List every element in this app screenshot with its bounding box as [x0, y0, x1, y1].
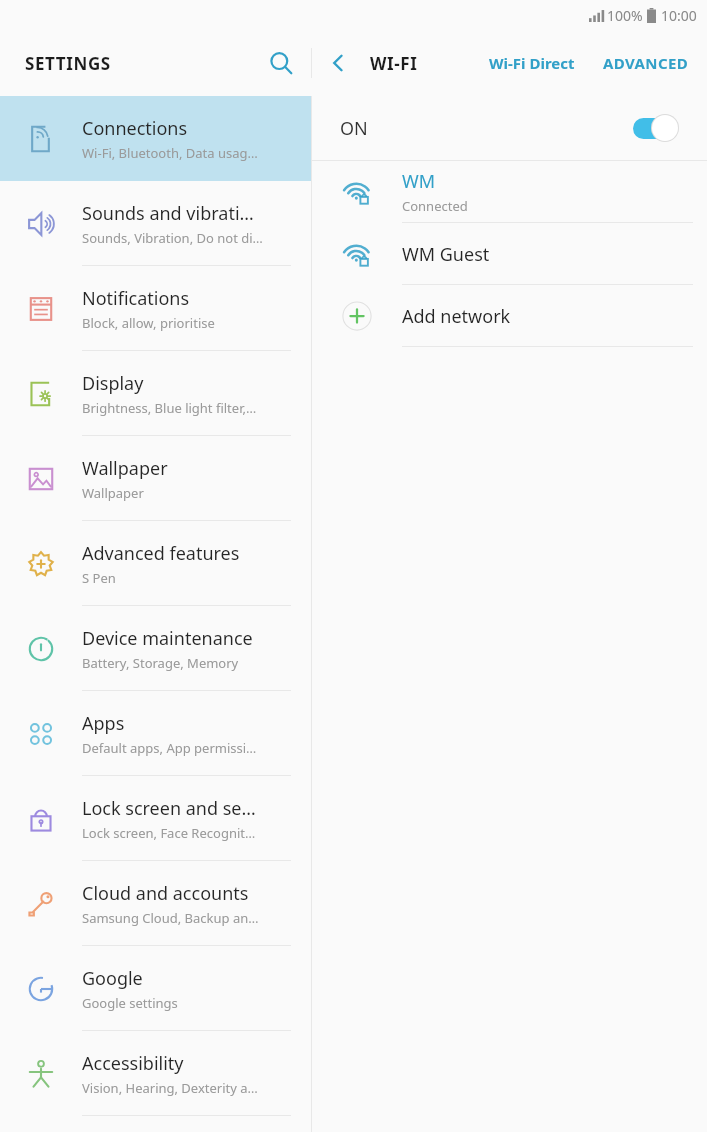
staticText: Wi-Fi, Bluetooth, Data usag… — [82, 144, 258, 162]
button[interactable]: Cloud and accounts — [0, 861, 311, 946]
staticText: Lock screen, Face Recognit… — [82, 824, 256, 842]
button[interactable]: Display — [0, 351, 311, 436]
staticText: Brightness, Blue light filter,… — [82, 399, 257, 417]
button[interactable]: Wallpaper — [0, 436, 311, 521]
staticText: Add network — [402, 304, 511, 329]
staticText: WM — [402, 169, 436, 194]
staticText: Connected — [402, 197, 468, 215]
button[interactable]: Wi-Fi Direct — [479, 41, 585, 85]
button[interactable]: Apps — [0, 691, 311, 776]
staticText: Sounds and vibrati… — [82, 201, 254, 226]
staticText: Google settings — [82, 994, 178, 1012]
staticText: Battery, Storage, Memory — [82, 654, 239, 672]
staticText: Wallpaper — [82, 456, 168, 481]
staticText: Block, allow, prioritise — [82, 314, 215, 332]
staticText: S Pen — [82, 569, 116, 587]
staticText: Wallpaper — [82, 484, 144, 502]
staticText: ON — [340, 116, 368, 141]
button[interactable]: Add network — [312, 285, 707, 347]
button[interactable]: Sounds and vibrati… — [0, 181, 311, 266]
button[interactable]: Notifications — [0, 266, 311, 351]
button[interactable]: ADVANCED — [593, 41, 699, 85]
button[interactable]: WM Guest — [312, 223, 707, 285]
staticText: Default apps, App permissi… — [82, 739, 257, 757]
staticText: Device maintenance — [82, 626, 253, 651]
button[interactable]: ON — [312, 96, 707, 160]
button[interactable]: Lock screen and se… — [0, 776, 311, 861]
button[interactable]: Accessibility — [0, 1031, 311, 1116]
staticText: Apps — [82, 711, 125, 736]
staticText: Cloud and accounts — [82, 881, 249, 906]
staticText: 10:00 — [661, 6, 697, 25]
button[interactable]: Google — [0, 946, 311, 1031]
staticText: Lock screen and se… — [82, 796, 256, 821]
staticText: Display — [82, 371, 144, 396]
staticText: Wi-Fi Direct — [489, 53, 575, 73]
staticText: Google — [82, 966, 143, 991]
staticText: SETTINGS — [25, 52, 111, 75]
staticText: Vision, Hearing, Dexterity a… — [82, 1079, 258, 1097]
staticText: Notifications — [82, 286, 190, 311]
staticText: 100% — [607, 6, 643, 25]
staticText: ADVANCED — [603, 53, 689, 73]
staticText: Advanced features — [82, 541, 240, 566]
button[interactable]: Advanced features — [0, 521, 311, 606]
button[interactable]: Back — [312, 37, 364, 89]
button[interactable]: Device maintenance — [0, 606, 311, 691]
button[interactable]: WM — [312, 161, 707, 223]
staticText: Connections — [82, 116, 188, 141]
staticText: Sounds, Vibration, Do not di… — [82, 229, 263, 247]
staticText: Samsung Cloud, Backup an… — [82, 909, 259, 927]
other: Wi-Fi toggle — [631, 113, 681, 143]
button[interactable]: Connections — [0, 96, 311, 181]
staticText: WI-FI — [370, 52, 418, 75]
staticText: Accessibility — [82, 1051, 184, 1076]
button[interactable]: Search — [255, 37, 307, 89]
staticText: WM Guest — [402, 242, 490, 267]
